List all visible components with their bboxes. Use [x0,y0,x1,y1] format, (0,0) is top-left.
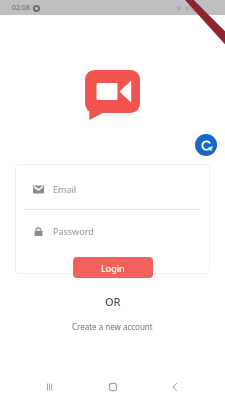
staticText: Password [53,225,94,237]
button[interactable]: Sync [195,134,217,156]
staticText: Login [101,262,125,274]
staticText: Create a new account [72,321,153,332]
button[interactable]: Login [73,257,153,278]
button[interactable]: Create a new account [68,317,157,336]
button[interactable]: Recents [37,374,63,400]
button[interactable]: Home [100,374,126,400]
button[interactable]: Back [162,374,188,400]
staticText: Email [53,183,77,195]
button[interactable]: Email [33,180,192,198]
staticText: 02:08 [12,3,30,13]
button[interactable]: Password [33,222,192,240]
staticText: OR [105,294,121,309]
